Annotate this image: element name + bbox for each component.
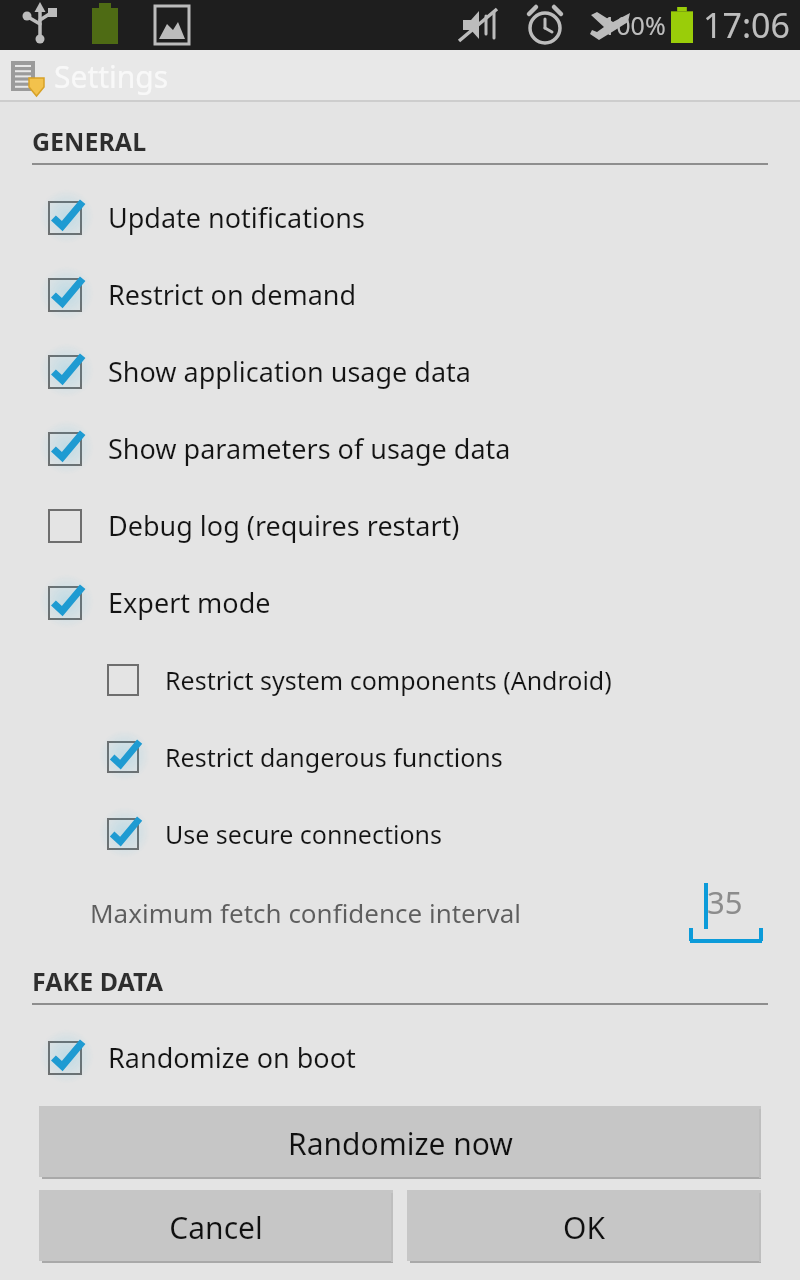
button[interactable]: Update notifications bbox=[0, 179, 800, 256]
staticText: Cancel bbox=[169, 1207, 263, 1248]
staticText: 35 bbox=[707, 881, 743, 923]
button[interactable]: Show application usage data bbox=[0, 333, 800, 410]
staticText: FAKE DATA bbox=[32, 964, 163, 998]
button[interactable]: Restrict dangerous functions bbox=[0, 718, 800, 795]
button[interactable]: Show parameters of usage data bbox=[0, 410, 800, 487]
button[interactable]: Use secure connections bbox=[0, 795, 800, 872]
button[interactable]: Maximum fetch confidence interval value bbox=[688, 881, 764, 943]
staticText: Expert mode bbox=[108, 584, 271, 621]
button[interactable]: Restrict on demand bbox=[0, 256, 800, 333]
staticText: Randomize now bbox=[288, 1123, 513, 1164]
button[interactable]: Restrict system components (Android) bbox=[0, 641, 800, 718]
button[interactable]: Expert mode bbox=[0, 564, 800, 641]
staticText: Randomize on boot bbox=[108, 1039, 356, 1076]
staticText: 17:06 bbox=[703, 2, 790, 48]
button[interactable]: OK bbox=[407, 1190, 761, 1264]
button[interactable]: Cancel bbox=[39, 1190, 393, 1264]
staticText: Restrict system components (Android) bbox=[165, 663, 612, 697]
staticText: Debug log (requires restart) bbox=[108, 507, 460, 544]
staticText: Settings bbox=[54, 56, 169, 97]
staticText: Restrict on demand bbox=[108, 276, 357, 313]
staticText: 100% bbox=[602, 8, 666, 42]
button[interactable]: Debug log (requires restart) bbox=[0, 487, 800, 564]
staticText: Use secure connections bbox=[165, 817, 442, 851]
staticText: Show parameters of usage data bbox=[108, 430, 511, 467]
staticText: Update notifications bbox=[108, 199, 365, 236]
staticText: Maximum fetch confidence interval bbox=[90, 895, 522, 930]
staticText: Show application usage data bbox=[108, 353, 471, 390]
button[interactable]: Randomize on boot bbox=[0, 1019, 800, 1096]
staticText: OK bbox=[563, 1207, 605, 1248]
staticText: GENERAL bbox=[32, 124, 147, 158]
staticText: Restrict dangerous functions bbox=[165, 740, 503, 774]
button[interactable]: Randomize now bbox=[39, 1106, 761, 1180]
